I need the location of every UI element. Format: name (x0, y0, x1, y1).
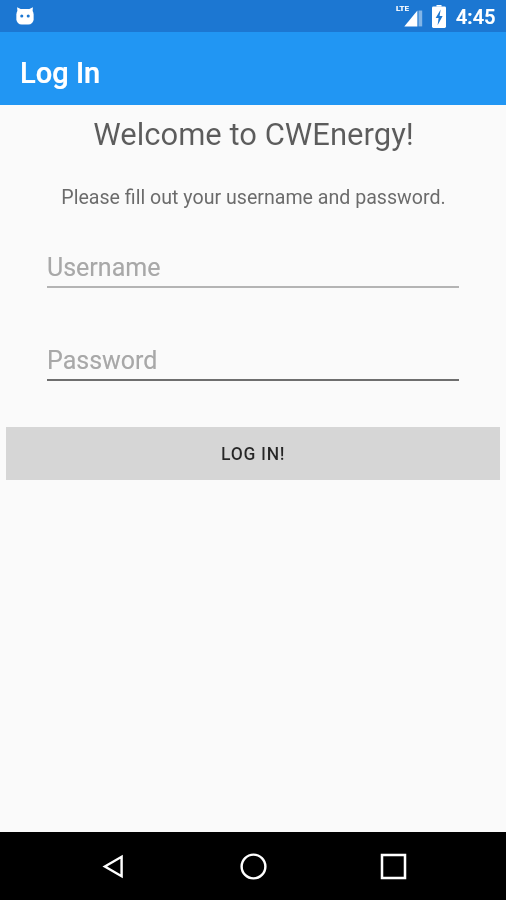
button[interactable]: Username (47, 253, 459, 288)
staticText: LOG IN! (221, 444, 286, 465)
staticText: Welcome to CWEnergy! (93, 116, 414, 152)
button[interactable]: Back (79, 832, 147, 900)
staticText: 4:45 (456, 5, 496, 28)
staticText: Username (47, 253, 161, 282)
button[interactable]: Home (219, 832, 287, 900)
staticText: Log In (20, 56, 101, 90)
staticText: Please fill out your username and passwo… (61, 186, 446, 209)
button[interactable]: Password (47, 346, 459, 381)
staticText: LTE (396, 4, 409, 13)
staticText: Password (47, 346, 158, 375)
button[interactable]: Recent apps (359, 832, 427, 900)
button[interactable]: LOG IN! (6, 427, 500, 480)
